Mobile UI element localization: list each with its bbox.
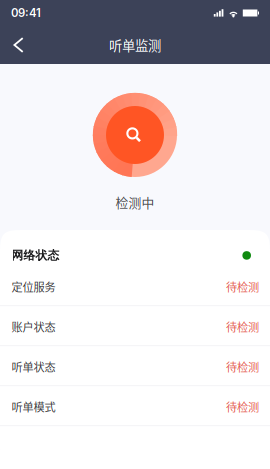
staticText: 定位服务 [11,278,55,295]
staticText: 待检测 [226,358,259,375]
staticText: 听单监测 [109,35,161,55]
button[interactable]: 定位服务 [0,268,270,308]
staticText: 待检测 [226,318,259,335]
staticText: 待检测 [226,398,259,415]
staticText: 听单模式 [11,398,55,415]
button[interactable]: 账户状态 [0,308,270,348]
staticText: 网络状态 [11,248,59,263]
staticText: 账户状态 [11,318,55,335]
button[interactable]: Back [0,28,35,62]
staticText: 检测中 [115,193,154,211]
button[interactable]: 听单状态 [0,348,270,388]
button[interactable]: 听单模式 [0,388,270,428]
staticText: 09:41 [11,6,41,20]
staticText: 听单状态 [11,358,55,375]
staticText: 待检测 [226,278,259,295]
